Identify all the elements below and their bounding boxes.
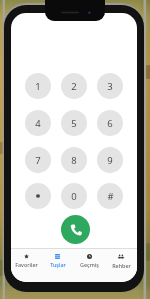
button[interactable]: 2 [61, 73, 87, 99]
staticText: 5 [71, 117, 77, 130]
button[interactable]: Tuşlar [42, 250, 73, 268]
button[interactable]: 3 [97, 73, 123, 99]
button[interactable]: 7 [25, 147, 51, 173]
button[interactable]: # [97, 183, 123, 209]
staticText: 9 [107, 154, 113, 167]
staticText: 6 [107, 117, 113, 130]
button[interactable]: Rehber [105, 250, 137, 269]
staticText: Rehber [112, 262, 131, 269]
staticText: # [107, 190, 114, 203]
button[interactable]: 8 [61, 147, 87, 173]
button[interactable]: Favoriler [11, 250, 42, 268]
staticText: 0 [71, 190, 77, 203]
button[interactable]: 4 [25, 110, 51, 136]
staticText: 1 [35, 80, 41, 93]
button[interactable]: 1 [25, 73, 51, 99]
staticText: 8 [71, 154, 77, 167]
button[interactable]: Ara [61, 215, 90, 244]
staticText: Favoriler [15, 261, 38, 268]
button[interactable]: 0 [61, 183, 87, 209]
staticText: Geçmiş [80, 261, 99, 268]
staticText: 2 [71, 80, 77, 93]
staticText: 4 [35, 117, 41, 130]
button[interactable]: Geçmiş [73, 250, 105, 268]
button[interactable]: 5 [61, 110, 87, 136]
staticText: 7 [35, 154, 41, 167]
button[interactable] [25, 183, 51, 209]
button[interactable]: 6 [97, 110, 123, 136]
staticText: Tuşlar [50, 261, 66, 268]
staticText: 3 [107, 80, 113, 93]
button[interactable]: 9 [97, 147, 123, 173]
